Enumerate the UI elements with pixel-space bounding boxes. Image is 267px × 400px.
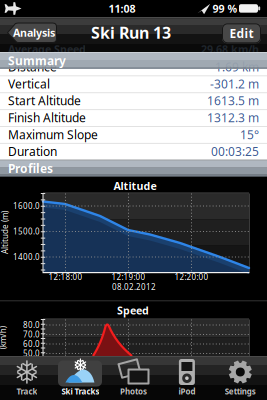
staticText: Start Altitude [8,93,81,109]
staticText: Ski Tracks [61,386,99,397]
staticText: Track [16,386,37,397]
staticText: 99 % [212,1,237,16]
button[interactable]: Analysis [0,17,64,49]
staticText: Average Speed [8,42,86,56]
staticText: iPod [178,386,195,397]
staticText: Finish Altitude [8,110,86,125]
button[interactable]: Ski Tracks [53,356,107,400]
staticText: 12:20:00 [174,272,208,282]
button[interactable]: Track [0,356,53,400]
button[interactable]: Settings [214,356,267,400]
button[interactable]: Photos [107,356,160,400]
button[interactable]: Edit [222,23,261,43]
staticText: Maximum Slope [8,126,98,142]
staticText: 12:19:00 [111,272,145,282]
staticText: Altitude [113,179,156,193]
staticText: 1400.0 [13,252,40,262]
staticText: 60.0 [23,339,40,349]
staticText: Profiles [8,160,53,176]
staticText: 1312.3 m [207,110,259,125]
staticText: 1613.5 m [207,93,259,109]
staticText: 80.0 [23,320,40,330]
staticText: Distance [8,59,57,75]
staticText: 1.69 km [215,59,259,75]
staticText: 1500.0 [13,226,40,237]
staticText: 1600.0 [13,201,40,211]
staticText: 15° [240,126,259,142]
staticText: 08.02.2012 [112,282,156,292]
staticText: Ski Run 13 [91,22,171,43]
staticText: Photos [120,386,147,397]
button[interactable]: iPod [160,356,213,400]
staticText: Analysis [13,26,55,40]
staticText: Settings [225,386,256,397]
staticText: Speed [117,303,149,317]
staticText: Summary [8,52,66,68]
staticText: 70.0 [23,329,40,340]
staticText: Vertical [8,76,50,92]
staticText: (km/h) [0,332,14,343]
staticText: Duration [8,143,57,159]
staticText: Altitude (m) [0,227,26,238]
staticText: 50.0 [23,348,40,359]
staticText: Edit [229,25,253,41]
staticText: 11:08 [108,1,135,16]
staticText: 29.68 km/h [201,42,259,56]
staticText: 00:03:25 [211,143,259,159]
staticText: 12:18:00 [48,272,82,282]
staticText: -301.2 m [210,76,259,92]
